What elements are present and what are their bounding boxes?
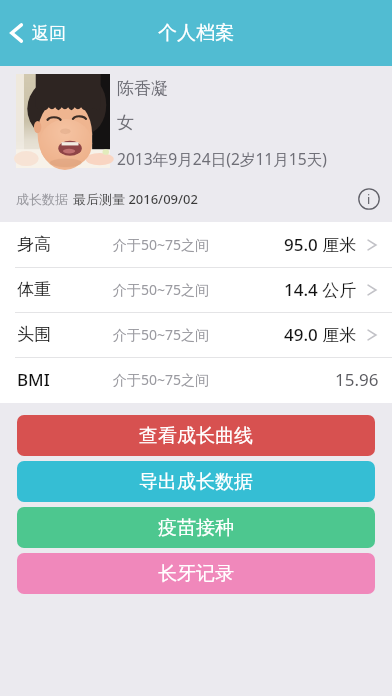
staticText: BMI xyxy=(17,368,50,391)
staticText: 最后测量 2016/09/02 xyxy=(73,190,198,208)
button[interactable]: 疫苗接种 xyxy=(17,507,375,548)
staticText: 长牙记录 xyxy=(158,562,234,586)
staticText: 查看成长曲线 xyxy=(139,424,253,448)
staticText: 疫苗接种 xyxy=(158,516,234,540)
button[interactable]: 体重 xyxy=(0,267,392,312)
staticText: 介于50~75之间 xyxy=(113,235,210,254)
staticText: 女 xyxy=(117,112,134,133)
staticText: 个人档案 xyxy=(158,21,234,45)
button[interactable]: Info xyxy=(358,188,380,210)
button[interactable]: 导出成长数据 xyxy=(17,461,375,502)
staticText: 95.0 厘米 xyxy=(284,233,357,256)
staticText: 身高 xyxy=(17,234,51,255)
staticText: 导出成长数据 xyxy=(139,470,253,494)
staticText: 49.0 厘米 xyxy=(284,323,357,346)
staticText: 成长数据 xyxy=(16,191,68,207)
button[interactable]: 返回 xyxy=(0,16,76,50)
staticText: 介于50~75之间 xyxy=(113,370,210,389)
staticText: 2013年9月24日(2岁11月15天) xyxy=(117,148,327,169)
button[interactable]: 头围 xyxy=(0,312,392,357)
button[interactable]: BMI xyxy=(0,357,392,402)
staticText: 介于50~75之间 xyxy=(113,325,210,344)
staticText: 介于50~75之间 xyxy=(113,280,210,299)
staticText: 头围 xyxy=(17,324,51,345)
staticText: i xyxy=(367,190,371,208)
staticText: 14.4 公斤 xyxy=(284,278,357,301)
button[interactable]: 长牙记录 xyxy=(17,553,375,594)
button[interactable]: 身高 xyxy=(0,222,392,267)
button[interactable]: 查看成长曲线 xyxy=(17,415,375,456)
staticText: 陈香凝 xyxy=(117,78,168,99)
staticText: 15.96 xyxy=(335,368,379,391)
staticText: 返回 xyxy=(32,23,66,44)
staticText: 体重 xyxy=(17,279,51,300)
